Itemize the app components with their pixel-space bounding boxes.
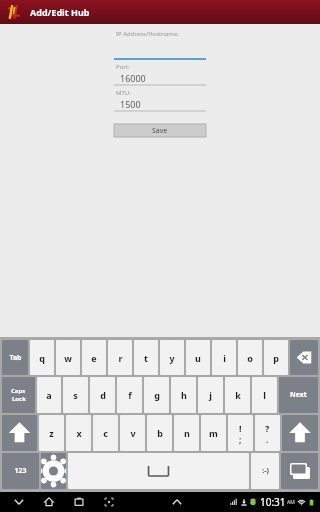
staticText: ! <box>239 422 242 434</box>
staticText: v <box>130 427 136 439</box>
staticText: AM <box>287 499 295 506</box>
button[interactable]: Shift <box>282 415 318 451</box>
staticText: MTU: <box>116 89 131 97</box>
staticText: 1500 <box>120 98 141 110</box>
staticText: 10:31 <box>260 495 286 509</box>
staticText: Add/Edit Hub <box>30 6 90 18</box>
button[interactable]: ? <box>255 415 280 451</box>
button[interactable]: Space <box>68 453 249 489</box>
button[interactable]: :-) <box>251 453 279 489</box>
button[interactable]: s <box>63 377 88 413</box>
button[interactable]: w <box>56 340 80 375</box>
button[interactable]: Backspace <box>290 340 318 375</box>
staticText: u <box>195 352 201 364</box>
button[interactable]: Expand <box>168 493 186 511</box>
button[interactable]: Caps <box>2 377 35 413</box>
button[interactable]: h <box>171 377 196 413</box>
staticText: ? <box>265 422 270 434</box>
staticText: y <box>169 352 175 364</box>
staticText: c <box>103 427 108 439</box>
staticText: k <box>235 389 241 401</box>
staticText: Caps <box>11 387 26 395</box>
button[interactable]: j <box>198 377 223 413</box>
staticText: p <box>273 352 279 364</box>
button[interactable]: q <box>30 340 54 375</box>
button[interactable]: Shift <box>2 415 37 451</box>
staticText: 16000 <box>120 72 146 84</box>
staticText: r <box>118 352 123 364</box>
staticText: s <box>73 389 78 401</box>
button[interactable]: 1500 <box>114 98 206 112</box>
staticText: o <box>247 352 253 364</box>
staticText: z <box>49 427 54 439</box>
button[interactable]: f <box>117 377 142 413</box>
button[interactable]: o <box>238 340 262 375</box>
button[interactable]: Save <box>114 124 206 137</box>
staticText: Save <box>152 126 168 136</box>
staticText: f <box>128 389 132 401</box>
button[interactable]: p <box>264 340 288 375</box>
staticText: ; <box>239 434 242 445</box>
button[interactable]: t <box>134 340 158 375</box>
staticText: l <box>263 389 266 401</box>
button[interactable]: 123 <box>2 453 39 489</box>
button[interactable]: Hide keyboard <box>10 493 28 511</box>
button[interactable]: c <box>93 415 118 451</box>
button[interactable]: u <box>186 340 210 375</box>
button[interactable]: ! <box>228 415 253 451</box>
staticText: w <box>64 352 72 364</box>
button[interactable]: z <box>39 415 64 451</box>
button[interactable]: b <box>147 415 172 451</box>
staticText: Lock <box>12 395 26 403</box>
staticText: t <box>144 352 148 364</box>
button[interactable] <box>114 48 206 60</box>
button[interactable]: m <box>201 415 226 451</box>
staticText: g <box>154 389 160 401</box>
staticText: e <box>91 352 97 364</box>
staticText: :-) <box>262 466 269 476</box>
button[interactable]: 16000 <box>114 72 206 86</box>
button[interactable]: Switch keyboard <box>281 453 318 489</box>
staticText: b <box>157 427 163 439</box>
button[interactable]: y <box>160 340 184 375</box>
button[interactable]: d <box>90 377 115 413</box>
button[interactable]: e <box>82 340 106 375</box>
button[interactable]: k <box>225 377 250 413</box>
staticText: h <box>181 389 187 401</box>
staticText: j <box>209 389 212 401</box>
button[interactable]: x <box>66 415 91 451</box>
button[interactable]: v <box>120 415 145 451</box>
staticText: d <box>100 389 106 401</box>
staticText: i <box>223 352 226 364</box>
button[interactable]: i <box>212 340 236 375</box>
staticText: . <box>266 434 269 445</box>
staticText: Tab <box>9 353 22 363</box>
staticText: Port: <box>116 63 130 71</box>
staticText: n <box>184 427 190 439</box>
button[interactable]: Next <box>279 377 318 413</box>
staticText: a <box>46 389 52 401</box>
button[interactable]: Screenshot <box>100 493 118 511</box>
button[interactable]: g <box>144 377 169 413</box>
staticText: 123 <box>14 466 27 476</box>
button[interactable]: l <box>252 377 277 413</box>
button[interactable]: Settings <box>41 453 66 489</box>
button[interactable]: Home <box>40 493 58 511</box>
button[interactable]: Recents <box>70 493 88 511</box>
button[interactable]: Tab <box>2 340 28 375</box>
button[interactable]: a <box>37 377 61 413</box>
staticText: IP Address/Hostname: <box>116 30 179 38</box>
staticText: q <box>39 352 45 364</box>
staticText: m <box>209 427 218 439</box>
button[interactable]: r <box>108 340 132 375</box>
button[interactable]: n <box>174 415 199 451</box>
staticText: x <box>76 427 82 439</box>
staticText: Next <box>290 390 307 400</box>
